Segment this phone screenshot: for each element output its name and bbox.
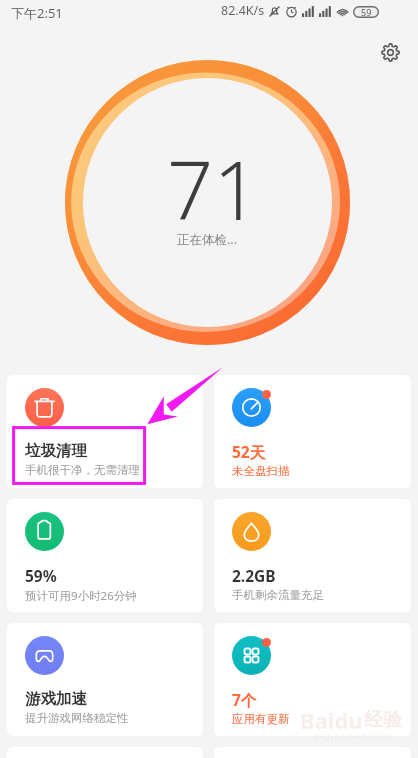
staticText: 正在体检... bbox=[177, 231, 238, 248]
staticText: 82.4K/s bbox=[221, 2, 265, 19]
staticText: 59 bbox=[361, 6, 372, 18]
button[interactable]: 7个 bbox=[214, 623, 411, 736]
staticText: 下午2:51 bbox=[11, 4, 63, 22]
staticText: 59% bbox=[25, 565, 57, 586]
button[interactable]: 59% bbox=[7, 499, 203, 612]
button[interactable]: 游戏加速 bbox=[7, 623, 203, 736]
button[interactable]: Settings bbox=[376, 38, 404, 66]
staticText: 预计可用9小时26分钟 bbox=[25, 588, 137, 604]
staticText: 应用有更新 bbox=[232, 712, 290, 726]
button[interactable]: 52天 bbox=[214, 375, 411, 488]
staticText: 2.2GB bbox=[232, 565, 276, 586]
staticText: 游戏加速 bbox=[25, 689, 87, 709]
staticText: jingyan.baidu.com bbox=[314, 729, 392, 741]
staticText: 71 bbox=[167, 133, 260, 243]
button[interactable]: 2.2GB bbox=[214, 499, 411, 612]
staticText: 52天 bbox=[232, 441, 266, 462]
staticText: 未全盘扫描 bbox=[232, 464, 290, 478]
staticText: 垃圾清理 bbox=[25, 441, 87, 461]
staticText: 7个 bbox=[232, 689, 257, 710]
staticText: 手机剩余流量充足 bbox=[232, 588, 324, 602]
button[interactable]: 垃圾清理 bbox=[7, 375, 203, 488]
staticText: 手机很干净，无需清理 bbox=[25, 463, 140, 477]
staticText: 经验 bbox=[364, 708, 402, 732]
staticText: Baidu bbox=[300, 705, 363, 735]
staticText: 提升游戏网络稳定性 bbox=[25, 711, 129, 725]
